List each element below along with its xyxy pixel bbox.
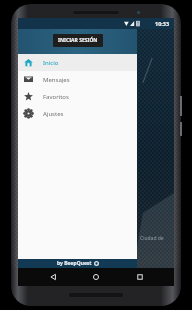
button[interactable]: Favoritos bbox=[18, 88, 137, 105]
staticText: INICIAR SESIÓN bbox=[58, 37, 98, 44]
staticText: Inicio bbox=[43, 59, 59, 67]
staticText: Mensajes bbox=[43, 76, 70, 84]
staticText: Favoritos bbox=[43, 93, 69, 101]
staticText: 10:33 bbox=[155, 20, 170, 27]
button[interactable]: Inicio bbox=[18, 54, 137, 71]
button[interactable]: Ajustes bbox=[18, 105, 137, 122]
button[interactable]: Mensajes bbox=[18, 71, 137, 88]
button[interactable]: Recents bbox=[131, 268, 149, 286]
button[interactable]: INICIAR SESIÓN bbox=[53, 34, 103, 47]
button[interactable]: Back bbox=[44, 268, 62, 286]
button[interactable]: by BeepQuest bbox=[18, 259, 137, 268]
button[interactable]: Home bbox=[87, 268, 105, 286]
staticText: Ciudad de bbox=[140, 235, 164, 242]
staticText: by BeepQuest bbox=[57, 260, 92, 267]
staticText: Ajustes bbox=[43, 110, 64, 118]
